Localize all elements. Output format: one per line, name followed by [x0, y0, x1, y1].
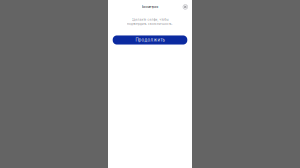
button[interactable]: Закрыть — [183, 4, 188, 9]
staticText: Продолжить — [135, 37, 164, 43]
staticText: подтвердить свою личность. — [127, 22, 173, 26]
staticText: Сделайте селфи, чтобы — [131, 18, 168, 21]
staticText: Биометрия — [141, 5, 158, 9]
button[interactable]: Продолжить — [113, 35, 187, 44]
